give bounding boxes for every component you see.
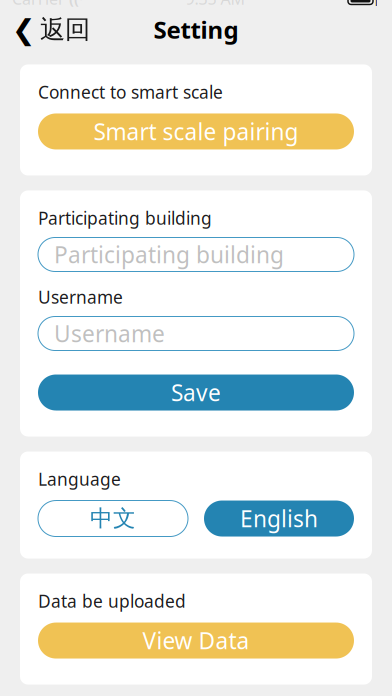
staticText: 9:35 AM bbox=[185, 0, 245, 9]
staticText: Username bbox=[38, 285, 123, 308]
button[interactable]: Save bbox=[38, 374, 354, 410]
staticText: Carrier bbox=[12, 0, 65, 9]
staticText: Smart scale pairing bbox=[93, 116, 298, 146]
staticText: View Data bbox=[142, 625, 249, 656]
staticText: Connect to smart scale bbox=[38, 80, 223, 103]
staticText: 中文 bbox=[90, 505, 136, 532]
staticText: Username bbox=[54, 318, 165, 349]
button[interactable]: 中文 bbox=[38, 500, 188, 536]
staticText: Language bbox=[38, 467, 121, 490]
staticText: English bbox=[240, 503, 318, 534]
staticText: Participating building bbox=[38, 206, 212, 229]
staticText: Data be uploaded bbox=[38, 589, 186, 612]
staticText: | bbox=[373, 0, 380, 6]
staticText: ❮ bbox=[12, 14, 35, 45]
staticText: Participating building bbox=[54, 239, 284, 269]
button[interactable]: View Data bbox=[38, 622, 354, 658]
staticText: Setting bbox=[153, 13, 238, 45]
button[interactable]: Smart scale pairing bbox=[38, 113, 354, 149]
staticText: 返回 bbox=[40, 14, 90, 45]
staticText: Save bbox=[171, 377, 221, 408]
button[interactable]: ❮ bbox=[0, 8, 102, 51]
button[interactable]: English bbox=[204, 500, 354, 536]
staticText: ((· bbox=[65, 0, 83, 8]
